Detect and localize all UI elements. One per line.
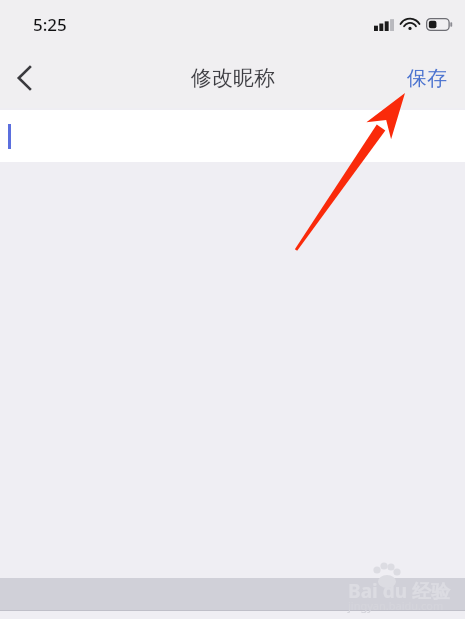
button[interactable]: 保存 bbox=[389, 54, 465, 103]
staticText: Bai du 经验 bbox=[348, 578, 450, 604]
button[interactable]: 返回 bbox=[0, 54, 48, 102]
staticText: 修改昵称 bbox=[191, 65, 275, 91]
button[interactable] bbox=[0, 110, 465, 162]
staticText: 保存 bbox=[407, 66, 447, 91]
staticText: 5:25 bbox=[33, 13, 67, 36]
staticText: jingyan.baidu.com bbox=[348, 598, 444, 613]
